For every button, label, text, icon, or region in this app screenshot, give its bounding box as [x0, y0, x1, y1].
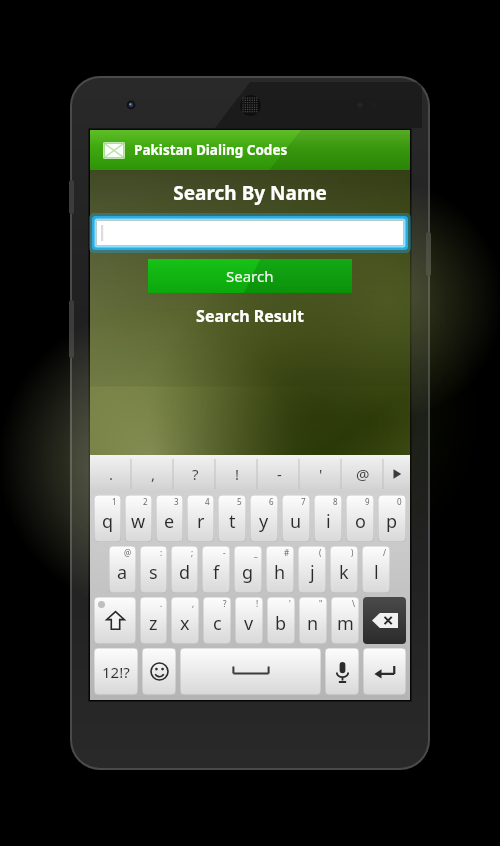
staticText: e: [164, 509, 175, 534]
staticText: z: [149, 611, 158, 636]
staticText: p: [386, 509, 398, 534]
button[interactable]: s: [140, 546, 167, 593]
staticText: y: [259, 509, 269, 534]
staticText: @: [124, 547, 132, 558]
button[interactable]: l: [362, 546, 390, 593]
button[interactable]: Search: [148, 259, 352, 293]
staticText: m: [337, 611, 354, 636]
staticText: d: [179, 560, 191, 585]
staticText: !: [235, 464, 240, 484]
button[interactable]: z: [140, 597, 167, 644]
staticText: !: [256, 598, 259, 609]
button[interactable]: ': [300, 455, 342, 493]
staticText: ?: [223, 598, 227, 609]
button[interactable]: Space: [180, 648, 321, 695]
staticText: /: [383, 547, 386, 558]
button[interactable]: o: [346, 495, 374, 542]
staticText: a: [117, 560, 128, 585]
staticText: #: [284, 547, 290, 558]
button[interactable]: d: [171, 546, 198, 593]
button[interactable]: Shift: [94, 597, 136, 644]
button[interactable]: c: [203, 597, 231, 644]
staticText: .: [109, 464, 114, 484]
staticText: i: [326, 509, 331, 534]
button[interactable]: n: [299, 597, 327, 644]
button[interactable]: u: [282, 495, 310, 542]
staticText: 12!?: [102, 662, 130, 682]
button[interactable]: ?: [174, 455, 216, 493]
staticText: w: [131, 509, 146, 534]
staticText: s: [149, 560, 158, 585]
staticText: t: [229, 509, 236, 534]
staticText: \: [352, 598, 355, 609]
staticText: 3: [174, 496, 179, 507]
button[interactable]: @: [342, 455, 384, 493]
button[interactable]: Backspace: [363, 597, 406, 644]
staticText: .: [160, 598, 163, 609]
staticText: -: [223, 547, 226, 558]
staticText: 9: [365, 496, 370, 507]
staticText: r: [197, 509, 205, 534]
staticText: Pakistan Dialing Codes: [134, 141, 288, 159]
button[interactable]: j: [298, 546, 326, 593]
staticText: 5: [237, 496, 242, 507]
staticText: 4: [205, 496, 210, 507]
button[interactable]: b: [267, 597, 295, 644]
staticText: @: [356, 464, 370, 484]
button[interactable]: m: [331, 597, 359, 644]
button[interactable]: p: [378, 495, 406, 542]
button[interactable]: i: [314, 495, 342, 542]
staticText: (: [319, 547, 322, 558]
button[interactable]: w: [125, 495, 152, 542]
button[interactable]: k: [330, 546, 358, 593]
button[interactable]: q: [94, 495, 121, 542]
button[interactable]: x: [171, 597, 199, 644]
button[interactable]: y: [250, 495, 278, 542]
staticText: 2: [143, 496, 148, 507]
staticText: 8: [333, 496, 338, 507]
staticText: l: [374, 560, 379, 585]
staticText: 7: [301, 496, 306, 507]
button[interactable]: ,: [132, 455, 174, 493]
staticText: ': [289, 598, 291, 609]
staticText: h: [274, 560, 286, 585]
button[interactable]: t: [218, 495, 246, 542]
button[interactable]: More: [384, 455, 410, 493]
staticText: 6: [269, 496, 274, 507]
staticText: v: [244, 611, 254, 636]
staticText: ,: [192, 598, 195, 609]
staticText: f: [213, 560, 220, 585]
button[interactable]: e: [156, 495, 183, 542]
button[interactable]: !: [216, 455, 258, 493]
other: Mail: [103, 142, 125, 159]
button[interactable]: Mail: [90, 130, 410, 170]
button[interactable]: f: [202, 546, 230, 593]
staticText: -: [277, 464, 282, 484]
button[interactable]: .: [90, 455, 132, 493]
button[interactable]: v: [235, 597, 263, 644]
staticText: _: [254, 547, 258, 558]
button[interactable]: Enter: [363, 648, 406, 695]
button[interactable]: r: [187, 495, 214, 542]
staticText: ': [319, 464, 323, 484]
button[interactable]: 12!?: [94, 648, 138, 695]
staticText: Search By Name: [90, 180, 410, 206]
button[interactable]: -: [258, 455, 300, 493]
button[interactable]: a: [109, 546, 136, 593]
staticText: u: [290, 509, 302, 534]
staticText: ;: [191, 547, 194, 558]
button[interactable]: Emoji: [142, 648, 176, 695]
staticText: ?: [192, 464, 199, 484]
staticText: j: [310, 560, 315, 585]
staticText: :: [160, 547, 163, 558]
button[interactable]: g: [234, 546, 262, 593]
staticText: k: [339, 560, 349, 585]
button[interactable]: h: [266, 546, 294, 593]
staticText: Search Result: [90, 305, 410, 327]
button[interactable]: [92, 216, 408, 250]
staticText: c: [213, 611, 222, 636]
staticText: ,: [151, 464, 156, 484]
staticText: n: [307, 611, 319, 636]
staticText: ": [319, 598, 323, 609]
button[interactable]: Voice input: [325, 648, 359, 695]
